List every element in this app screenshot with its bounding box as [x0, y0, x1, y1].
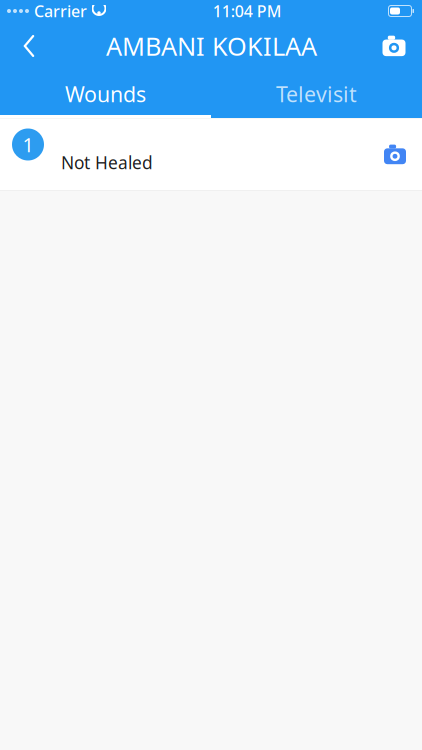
staticText: Wounds: [65, 80, 146, 108]
staticText: 11:04 PM: [213, 0, 282, 22]
staticText: 1: [22, 131, 33, 158]
staticText: Not Healed: [61, 151, 153, 174]
staticText: AMBANI KOKILAA: [106, 29, 317, 63]
staticText: Carrier: [34, 0, 87, 22]
button[interactable]: 1: [0, 118, 422, 191]
button[interactable]: Back: [7, 24, 51, 68]
staticText: Televisit: [276, 80, 357, 108]
button[interactable]: Camera: [372, 24, 416, 68]
button[interactable]: Wounds: [0, 70, 211, 118]
button[interactable]: Televisit: [211, 70, 422, 118]
